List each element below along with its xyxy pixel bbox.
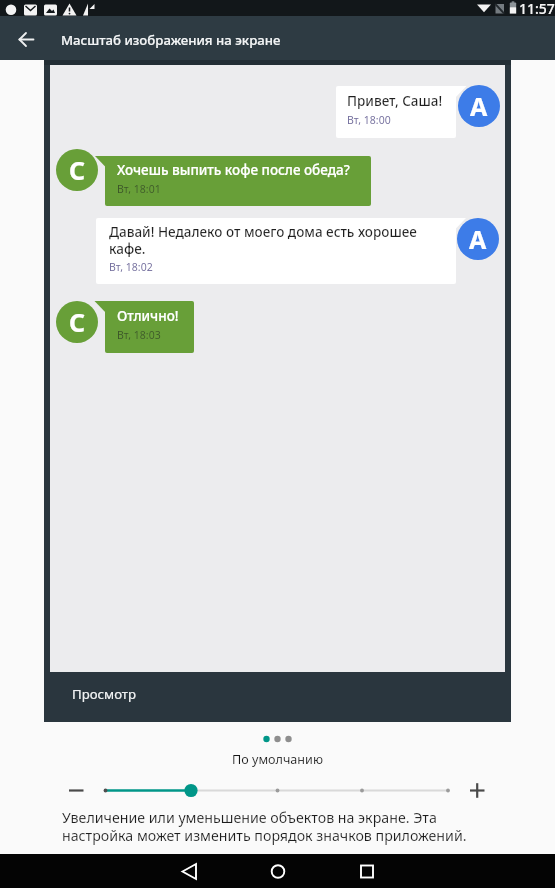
staticText: По умолчанию bbox=[0, 751, 555, 768]
button[interactable] bbox=[8, 21, 44, 57]
staticText: С bbox=[69, 153, 86, 187]
staticText: Вт, 18:02 bbox=[109, 260, 153, 274]
button[interactable] bbox=[233, 854, 322, 888]
button[interactable] bbox=[463, 776, 492, 805]
staticText: Масштаб изображения на экране bbox=[61, 31, 281, 49]
staticText: 11:57 bbox=[519, 0, 555, 18]
button[interactable] bbox=[98, 777, 455, 804]
staticText: А bbox=[470, 89, 488, 123]
staticText: Вт, 18:00 bbox=[347, 113, 391, 127]
staticText: С bbox=[69, 305, 86, 339]
staticText: Хочешь выпить кофе после обеда? bbox=[117, 161, 350, 179]
staticText: Давай! Недалеко от моего дома есть хорош… bbox=[109, 223, 417, 258]
staticText: Увеличение или уменьшение объектов на эк… bbox=[62, 808, 467, 845]
staticText: Вт, 18:01 bbox=[117, 182, 161, 196]
staticText: А bbox=[469, 222, 487, 256]
staticText: Вт, 18:03 bbox=[117, 328, 161, 342]
button[interactable] bbox=[62, 776, 91, 805]
button[interactable] bbox=[322, 854, 411, 888]
staticText: Привет, Саша! bbox=[347, 92, 443, 110]
staticText: Отлично! bbox=[117, 307, 179, 325]
staticText: Просмотр bbox=[72, 685, 136, 703]
button[interactable] bbox=[144, 854, 233, 888]
